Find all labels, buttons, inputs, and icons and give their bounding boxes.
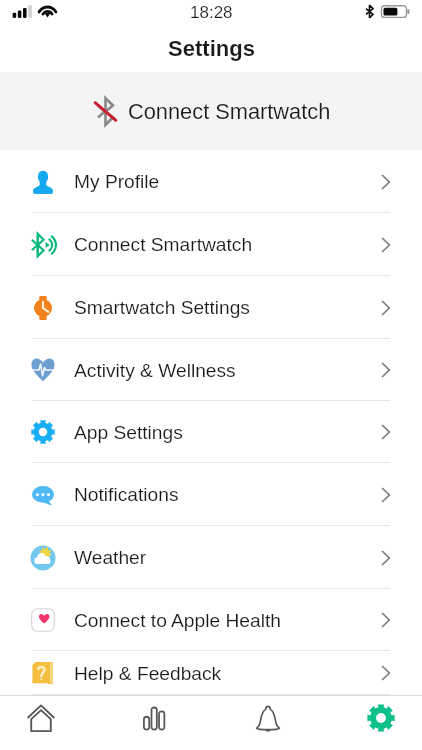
button[interactable]: Notifications bbox=[254, 704, 282, 732]
staticText: Weather bbox=[74, 547, 147, 568]
staticText: Connect Smartwatch bbox=[74, 234, 253, 255]
button[interactable]: Help & Feedback bbox=[0, 651, 422, 695]
button[interactable]: Connect Smartwatch bbox=[0, 213, 422, 276]
staticText: Activity & Wellness bbox=[74, 360, 236, 381]
button[interactable]: My Profile bbox=[0, 150, 422, 213]
button[interactable]: Home bbox=[27, 704, 55, 732]
button[interactable]: Statistics bbox=[140, 704, 168, 732]
staticText: App Settings bbox=[74, 422, 183, 443]
button[interactable]: App Settings bbox=[0, 401, 422, 463]
staticText: Notifications bbox=[74, 484, 179, 505]
button[interactable]: Settings bbox=[367, 704, 395, 732]
staticText: Connect to Apple Health bbox=[74, 610, 281, 631]
staticText: 18:28 bbox=[190, 3, 233, 22]
button[interactable]: Weather bbox=[0, 526, 422, 589]
staticText: My Profile bbox=[74, 171, 160, 192]
staticText: Settings bbox=[168, 36, 255, 61]
button[interactable]: Activity & Wellness bbox=[0, 339, 422, 401]
button[interactable]: Smartwatch Settings bbox=[0, 276, 422, 339]
staticText: Smartwatch Settings bbox=[74, 297, 250, 318]
staticText: Connect Smartwatch bbox=[128, 99, 331, 123]
button[interactable]: Connect Smartwatch bbox=[0, 72, 422, 150]
button[interactable]: Connect to Apple Health bbox=[0, 589, 422, 651]
button[interactable]: Notifications bbox=[0, 463, 422, 526]
staticText: Help & Feedback bbox=[74, 663, 222, 684]
